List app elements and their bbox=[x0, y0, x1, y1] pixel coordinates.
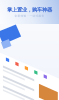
staticText: 掌上置业，购车神器 bbox=[7, 6, 52, 13]
staticText: 全新体验 · 一站式服务 bbox=[14, 14, 44, 17]
